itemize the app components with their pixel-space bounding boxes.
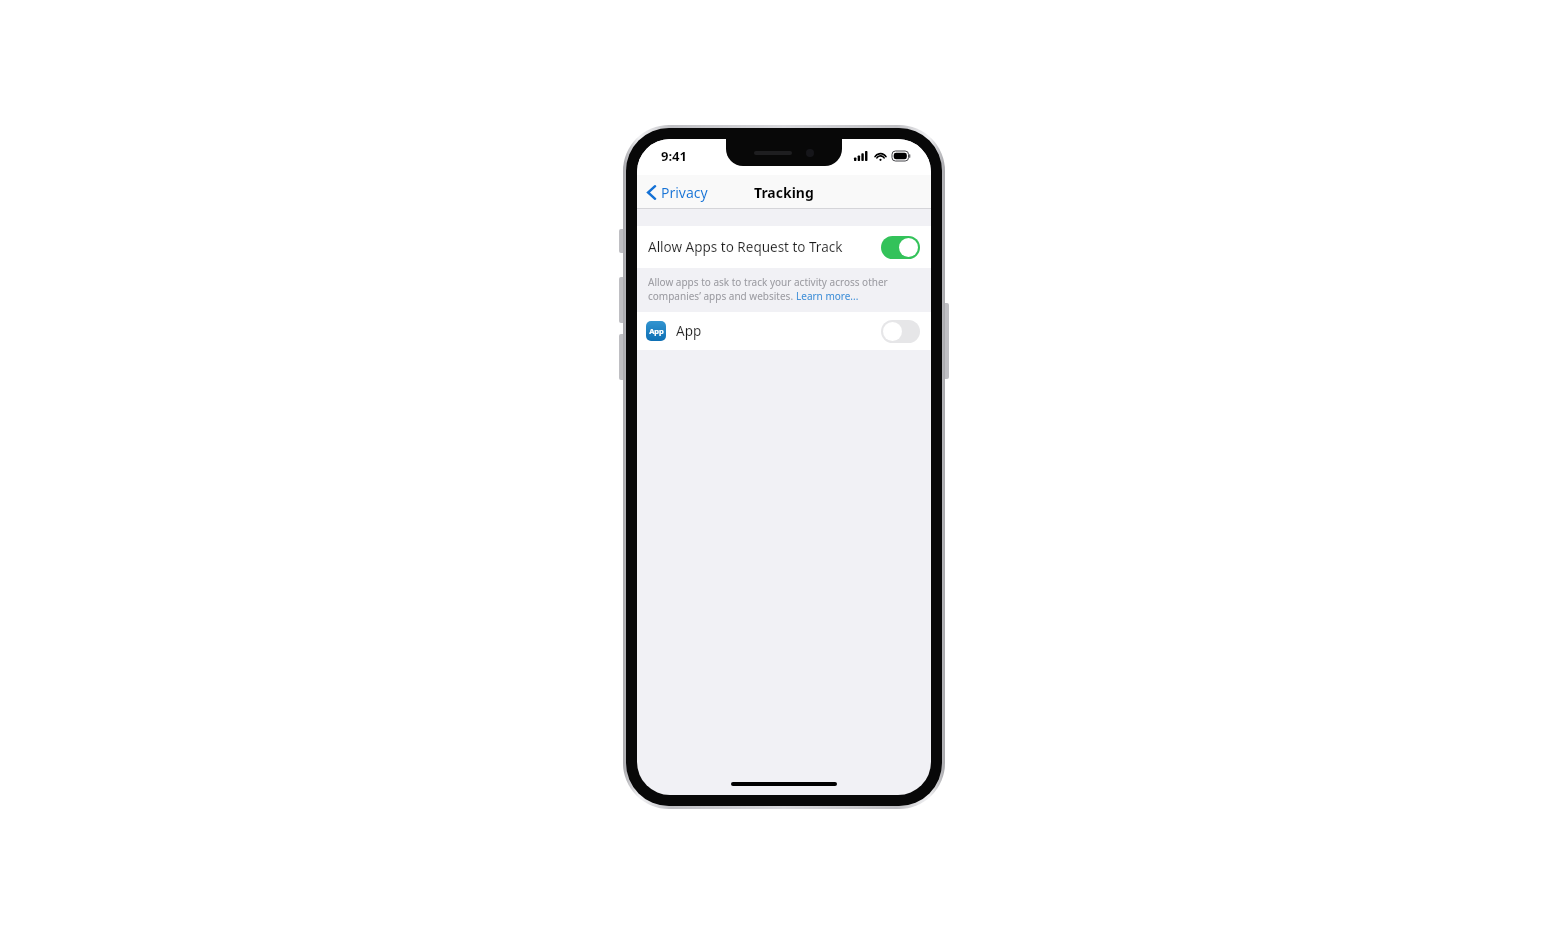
button[interactable]: Learn more... xyxy=(796,289,859,303)
button[interactable]: Allow Apps to Request to Track xyxy=(637,226,931,268)
staticText: Tracking xyxy=(754,183,814,202)
staticText: Privacy xyxy=(661,183,708,202)
button[interactable]: Privacy xyxy=(637,179,716,206)
staticText: Allow apps to ask to track your activity… xyxy=(648,275,888,289)
button[interactable]: Allow Apps to Request to Track toggle xyxy=(881,236,920,259)
button[interactable]: App tracking toggle xyxy=(881,320,920,343)
staticText: 9:41 xyxy=(661,147,687,165)
button[interactable]: App xyxy=(637,312,931,350)
staticText: App xyxy=(676,322,702,340)
staticText: Allow Apps to Request to Track xyxy=(648,238,843,256)
staticText: companies’ apps and websites. xyxy=(648,289,796,303)
staticText: App xyxy=(649,326,664,336)
